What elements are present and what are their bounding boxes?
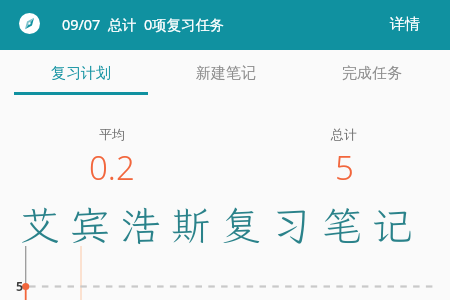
staticText: 详情 [390,15,420,34]
staticText: 0.2 [89,145,135,190]
staticText: 09/07 总计 0项复习任务 [62,15,225,35]
button[interactable]: 复习计划 [8,0,153,96]
button[interactable]: Navigation [19,13,40,34]
button[interactable]: 详情 [376,8,450,43]
staticText: 艾宾浩斯复习笔记 [0,199,446,252]
staticText: 新建笔记 [196,64,256,83]
staticText: 5 [16,278,24,295]
staticText: 5 [335,145,354,190]
button[interactable]: 完成任务 [299,0,445,96]
staticText: 平均 [99,126,125,142]
staticText: 复习计划 [51,64,111,83]
staticText: 总计 [331,126,357,142]
button[interactable]: 新建笔记 [153,0,299,96]
staticText: 完成任务 [342,64,402,83]
